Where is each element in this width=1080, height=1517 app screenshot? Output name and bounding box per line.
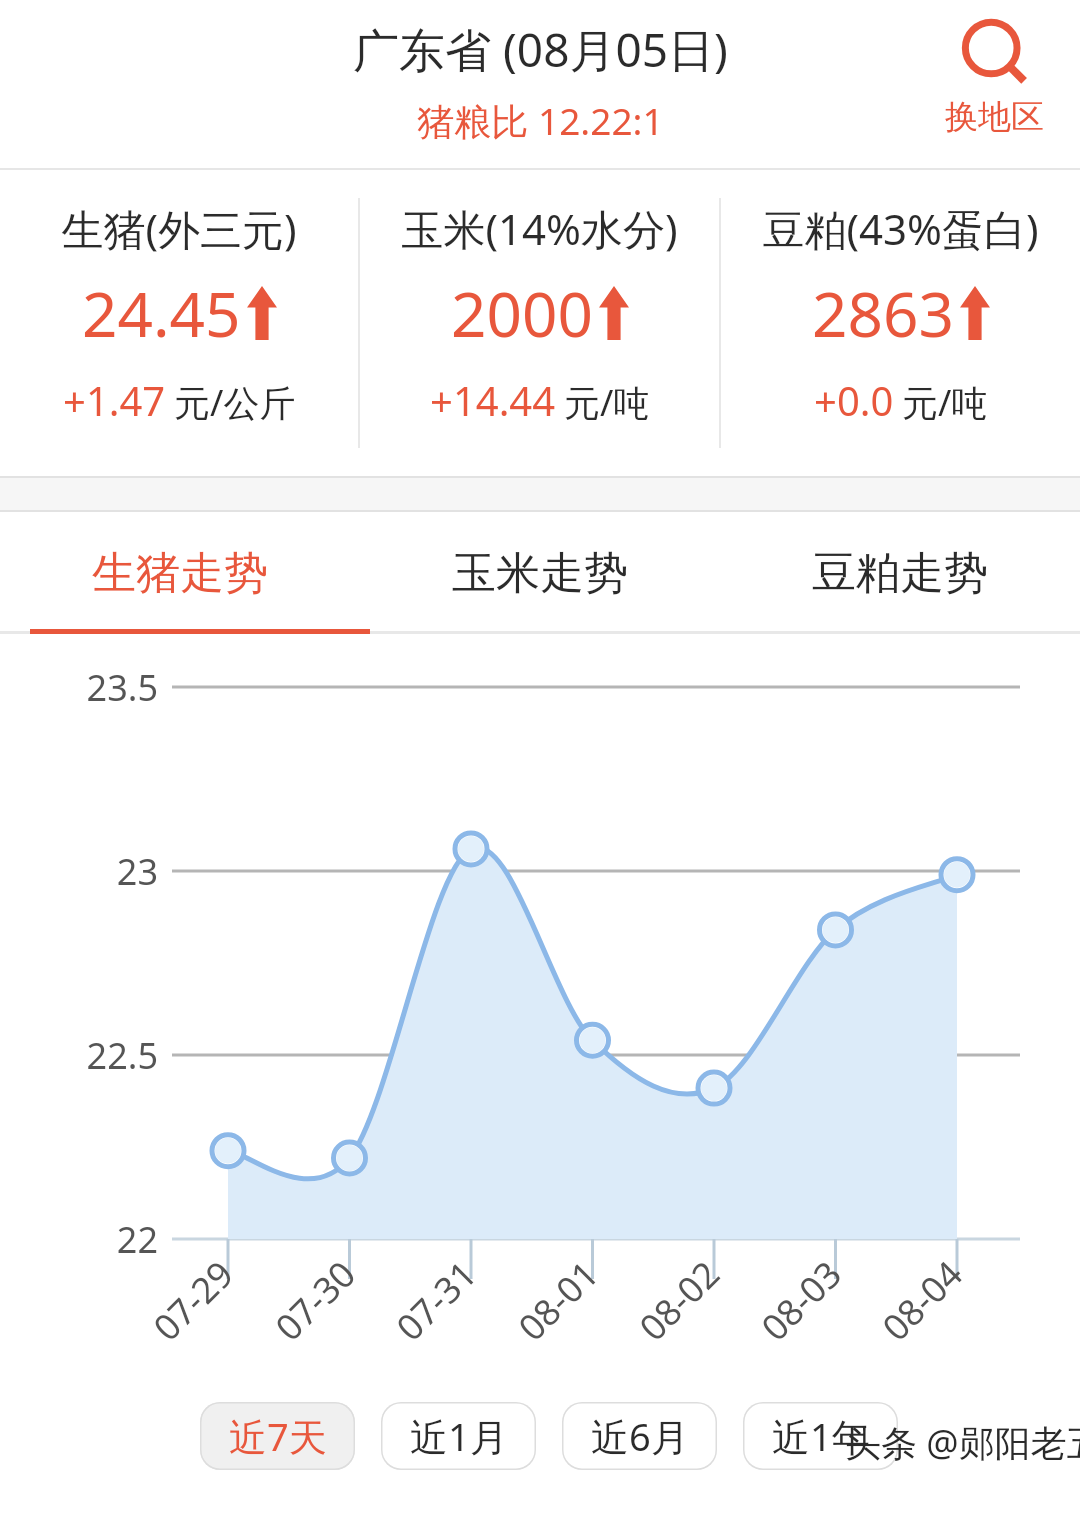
button[interactable]: 近7天 xyxy=(200,1402,355,1470)
staticText: 近1年 xyxy=(772,1410,870,1462)
staticText: 玉米(14%水分) xyxy=(401,200,678,257)
staticText: 生猪(外三元) xyxy=(61,200,297,257)
staticText: 22.5 xyxy=(36,1031,158,1080)
staticText: 22 xyxy=(36,1215,158,1264)
button[interactable]: 玉米(14%水分) xyxy=(360,170,719,476)
staticText: 豆粕(43%蛋白) xyxy=(762,200,1039,257)
button[interactable]: 豆粕(43%蛋白) xyxy=(721,170,1080,476)
staticText: 07-31 xyxy=(385,1250,486,1351)
staticText: +1.47 xyxy=(63,373,166,427)
staticText: 08-03 xyxy=(750,1250,851,1351)
button[interactable]: 豆粕走势 xyxy=(720,512,1080,634)
staticText: 换地区 xyxy=(945,96,1044,138)
staticText: 07-30 xyxy=(264,1250,365,1351)
staticText: 生猪走势 xyxy=(92,546,268,601)
staticText: 近1月 xyxy=(410,1410,508,1462)
staticText: 元/公斤 xyxy=(174,378,296,427)
staticText: 23 xyxy=(36,847,158,896)
staticText: 头条 @郧阳老五 xyxy=(845,1418,1080,1467)
staticText: +14.44 xyxy=(430,373,556,427)
button[interactable]: 近1年 xyxy=(743,1402,898,1470)
button[interactable]: 近1月 xyxy=(381,1402,536,1470)
staticText: 2863 xyxy=(812,271,954,355)
button[interactable]: 换地区 Change region xyxy=(939,10,1050,144)
staticText: 豆粕走势 xyxy=(812,546,988,601)
button[interactable]: 生猪(外三元) xyxy=(0,170,358,476)
staticText: 24.45 xyxy=(82,271,241,355)
button[interactable]: 生猪走势 xyxy=(0,512,360,634)
staticText: +0.0 xyxy=(814,373,894,427)
staticText: 元/吨 xyxy=(902,378,988,427)
staticText: 元/吨 xyxy=(564,378,650,427)
button[interactable]: 玉米走势 xyxy=(360,512,720,634)
staticText: 2000 xyxy=(451,271,593,355)
staticText: 近6月 xyxy=(591,1410,689,1462)
staticText: 近7天 xyxy=(229,1410,327,1462)
staticText: 广东省 (08月05日) xyxy=(353,18,728,81)
staticText: 08-01 xyxy=(507,1250,608,1351)
staticText: 玉米走势 xyxy=(452,546,628,601)
staticText: 猪粮比 12.22:1 xyxy=(417,95,664,146)
staticText: 08-02 xyxy=(628,1250,729,1351)
staticText: 23.5 xyxy=(36,663,158,712)
staticText: 07-29 xyxy=(142,1250,243,1351)
staticText: 08-04 xyxy=(871,1250,972,1351)
button[interactable]: 近6月 xyxy=(562,1402,717,1470)
